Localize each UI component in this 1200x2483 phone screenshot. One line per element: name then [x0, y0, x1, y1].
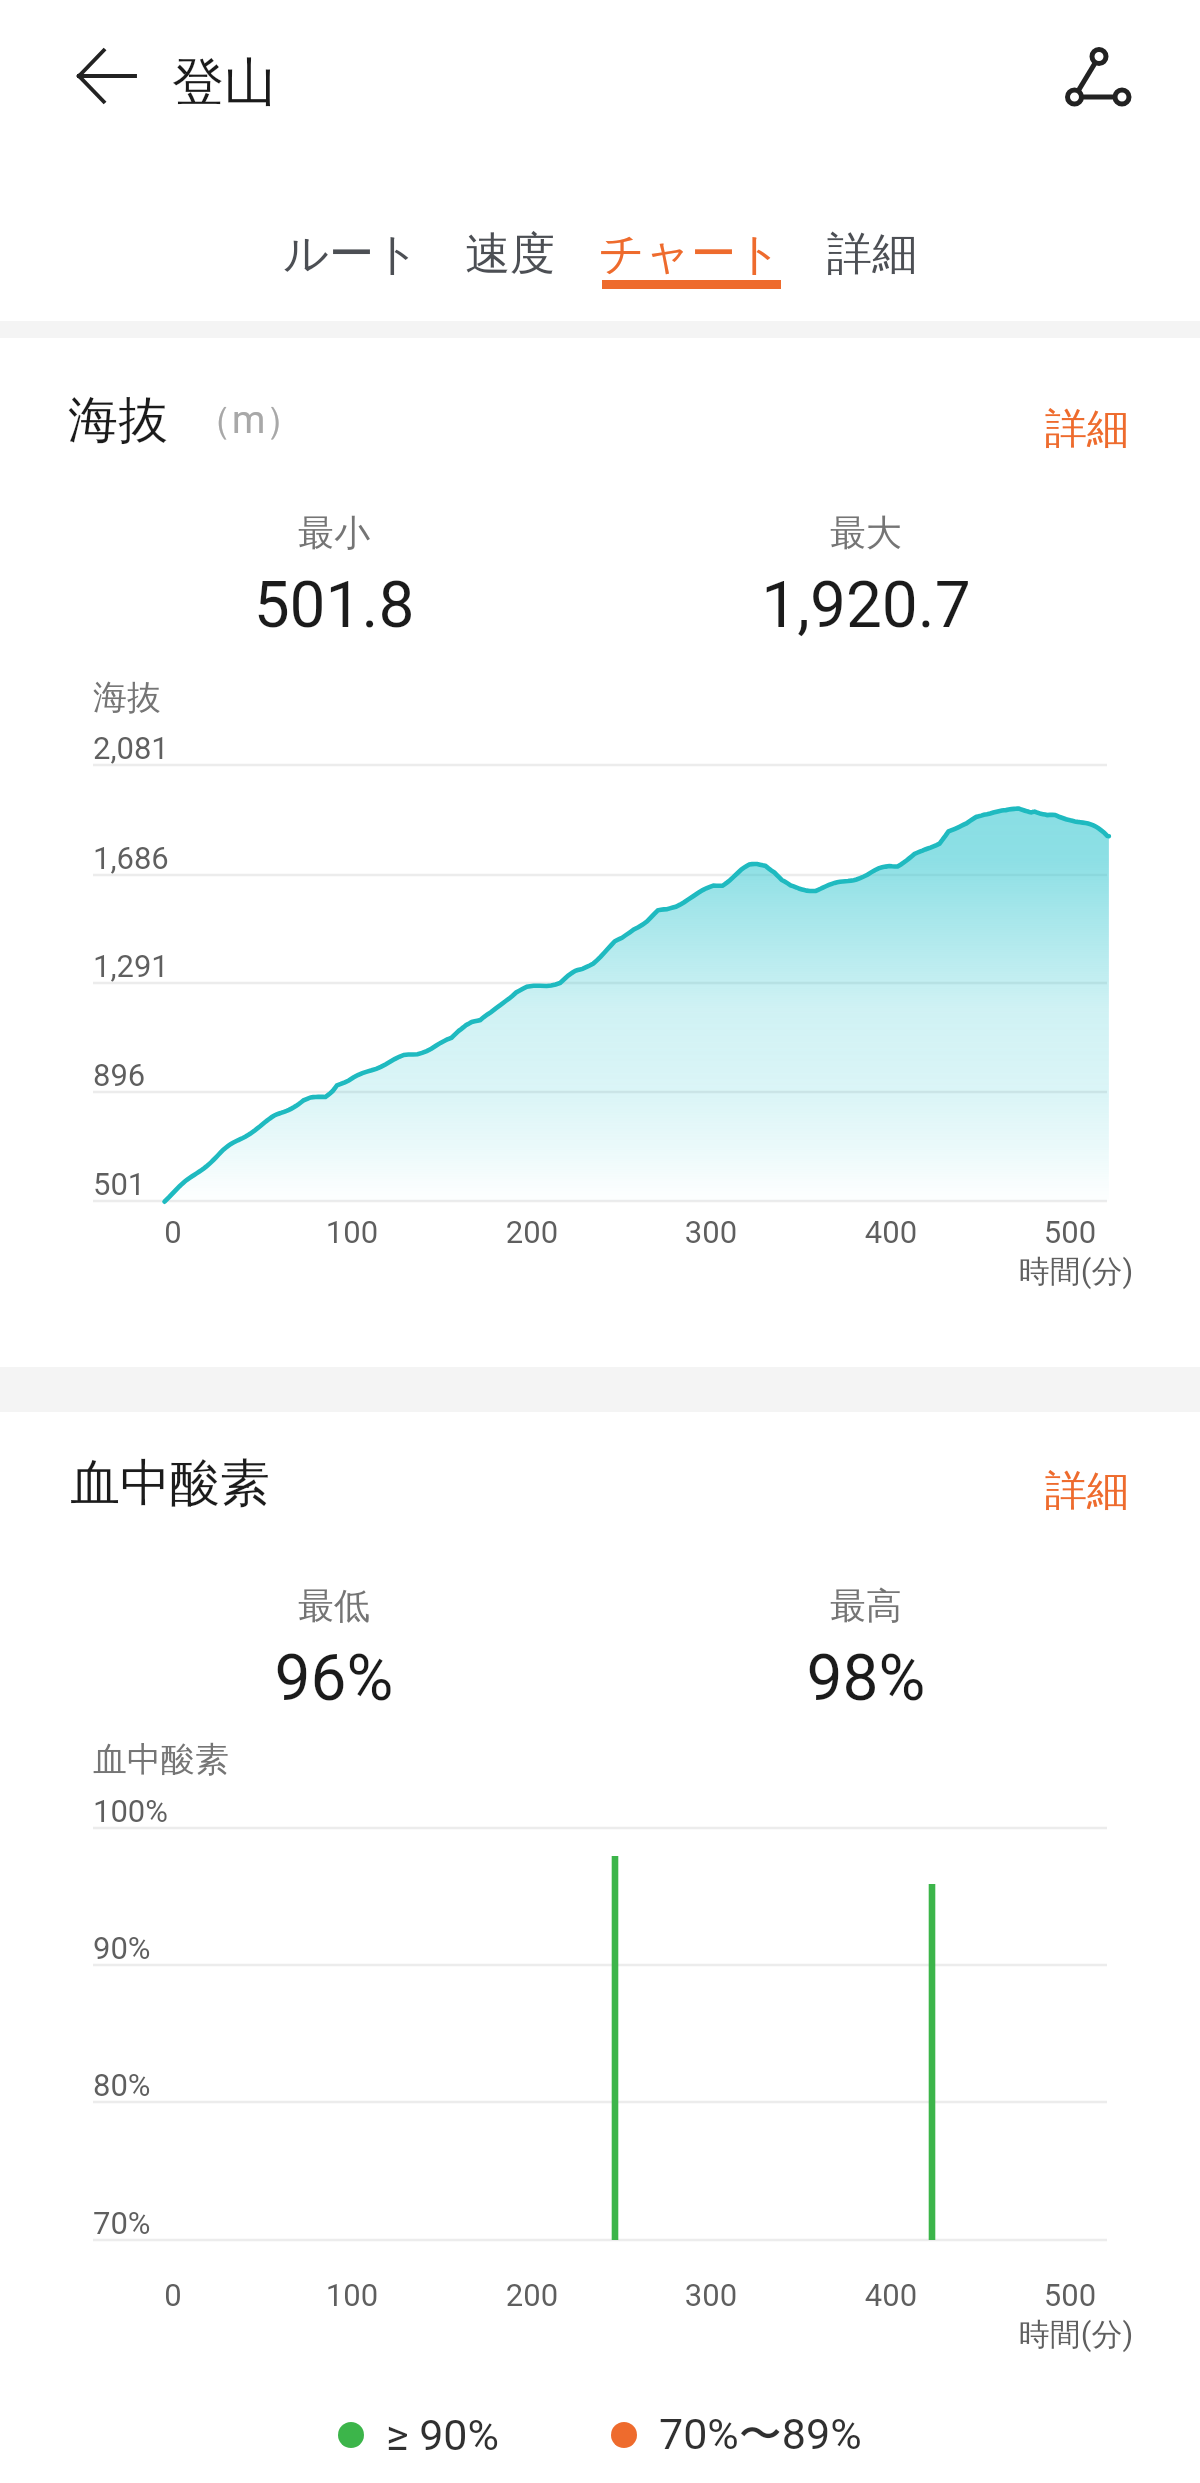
staticText: 海抜 — [68, 389, 168, 452]
staticText: ルート — [283, 226, 421, 283]
staticText: チャート — [599, 226, 783, 283]
button[interactable]: 速度 — [465, 195, 555, 289]
button[interactable]: 詳細 — [1045, 375, 1129, 445]
staticText: 時間(分) — [876, 2315, 1200, 2354]
staticText: 300 — [511, 2277, 911, 2313]
staticText: 100% — [93, 1793, 168, 1829]
staticText: 100 — [152, 2277, 552, 2313]
staticText: 最高 — [666, 1583, 1066, 1628]
staticText: 70% — [93, 2205, 151, 2241]
staticText: 896 — [93, 1057, 146, 1093]
staticText: 90% — [93, 1930, 151, 1966]
staticText: 1,686 — [93, 840, 169, 876]
staticText: ≥ 90% — [386, 2410, 499, 2460]
staticText: 速度 — [465, 226, 555, 283]
staticText: 500 — [870, 2277, 1200, 2313]
staticText: （m） — [194, 396, 304, 444]
staticText: 500 — [870, 1214, 1200, 1250]
button[interactable]: チャート — [599, 195, 783, 289]
staticText: 血中酸素 — [70, 1452, 270, 1515]
staticText: 501.8 — [134, 568, 534, 643]
staticText: 時間(分) — [876, 1252, 1200, 1291]
button[interactable]: Back — [51, 20, 163, 132]
button[interactable]: 70%〜89% — [611, 2408, 862, 2462]
staticText: 98% — [666, 1641, 1066, 1716]
staticText: 80% — [93, 2067, 151, 2103]
staticText: 登山 — [172, 50, 276, 116]
staticText: 血中酸素 — [93, 1738, 229, 1781]
staticText: 0 — [0, 2277, 373, 2313]
button[interactable]: 詳細 — [827, 195, 917, 289]
button[interactable]: ルート — [283, 195, 421, 289]
staticText: 400 — [691, 1214, 1091, 1250]
staticText: 501 — [93, 1166, 146, 1202]
staticText: 0 — [0, 1214, 373, 1250]
staticText: 200 — [332, 2277, 732, 2313]
staticText: 詳細 — [827, 226, 917, 283]
staticText: 最低 — [134, 1583, 534, 1628]
staticText: 70%〜89% — [659, 2408, 862, 2462]
staticText: 1,291 — [93, 948, 169, 984]
staticText: 200 — [332, 1214, 732, 1250]
staticText: 最大 — [666, 510, 1066, 555]
staticText: 詳細 — [1045, 403, 1129, 456]
staticText: 96% — [134, 1641, 534, 1716]
button[interactable]: Share — [1036, 18, 1154, 136]
staticText: 海抜 — [93, 676, 161, 719]
staticText: 100 — [152, 1214, 552, 1250]
staticText: 最小 — [134, 510, 534, 555]
button[interactable]: ≥ 90% — [338, 2410, 499, 2460]
staticText: 400 — [691, 2277, 1091, 2313]
staticText: 詳細 — [1045, 1465, 1129, 1518]
button[interactable]: 詳細 — [1045, 1437, 1129, 1507]
staticText: 2,081 — [93, 730, 169, 766]
staticText: 1,920.7 — [666, 568, 1066, 643]
staticText: 300 — [511, 1214, 911, 1250]
